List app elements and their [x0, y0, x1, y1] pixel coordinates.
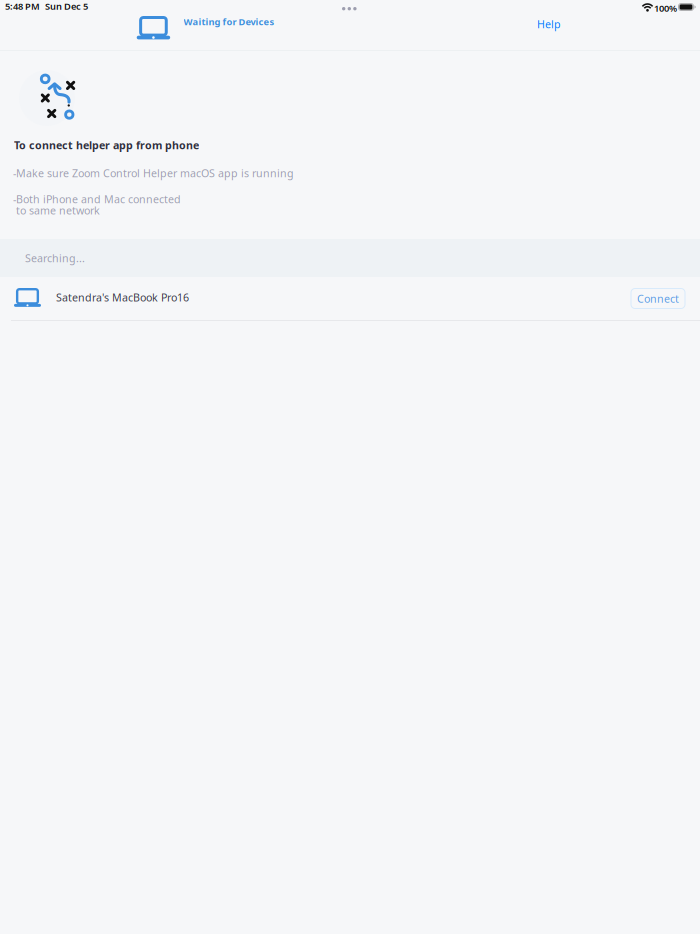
staticText: to same network: [13, 203, 100, 217]
staticText: Sun Dec 5: [45, 0, 88, 12]
staticText: -Both iPhone and Mac connected: [13, 192, 181, 206]
button[interactable]: Help: [525, 15, 573, 41]
staticText: To connect helper app from phone: [14, 138, 199, 152]
staticText: Searching...: [25, 251, 85, 265]
staticText: -Make sure Zoom Control Helper macOS app…: [13, 166, 294, 180]
staticText: Connect: [637, 291, 679, 306]
staticText: Help: [537, 17, 561, 31]
staticText: 100%: [654, 2, 677, 14]
staticText: Waiting for Devices: [183, 15, 274, 28]
staticText: Satendra's MacBook Pro16: [56, 290, 189, 304]
button[interactable]: Satendra's MacBook Pro16: [0, 277, 700, 320]
staticText: 5:48 PM: [5, 0, 40, 12]
button[interactable]: Connect: [630, 288, 685, 309]
